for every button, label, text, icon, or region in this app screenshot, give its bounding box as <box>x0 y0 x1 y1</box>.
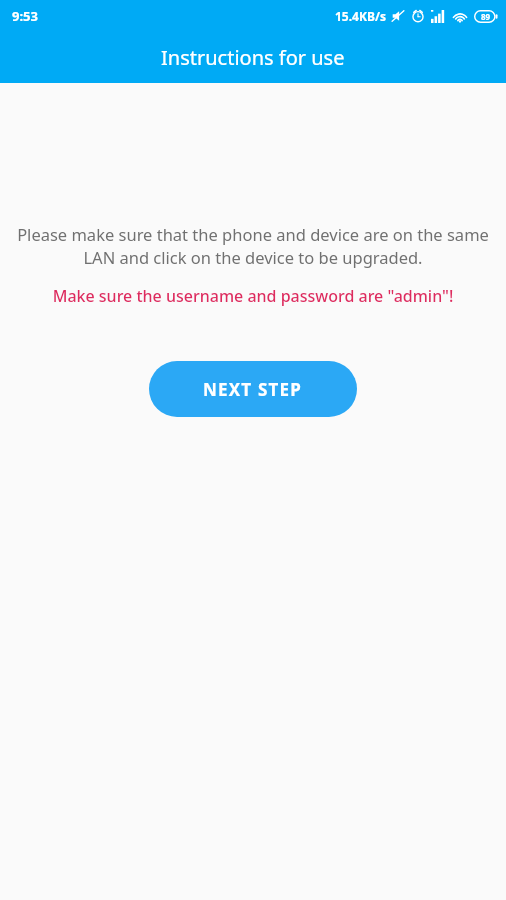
staticText: 89 <box>481 11 491 22</box>
staticText: Make sure the username and password are … <box>12 285 494 307</box>
staticText: 9:53 <box>12 7 38 25</box>
staticText: Instructions for use <box>161 44 345 71</box>
staticText: 15.4KB/s <box>335 8 386 24</box>
staticText: NEXT STEP <box>203 378 303 401</box>
staticText: Please make sure that the phone and devi… <box>16 223 490 269</box>
button[interactable]: NEXT STEP <box>149 361 357 417</box>
